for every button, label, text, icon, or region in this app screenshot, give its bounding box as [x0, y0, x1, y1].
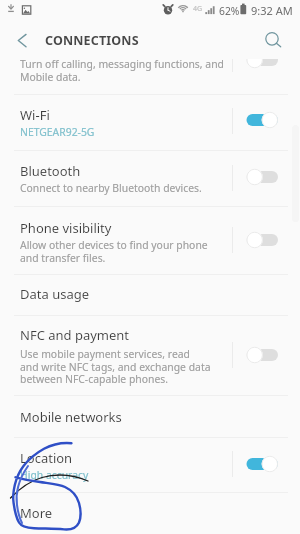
staticText: Allow other devices to find your phone a…: [20, 238, 208, 265]
staticText: Location: [20, 449, 73, 467]
staticText: NETGEAR92-5G: [20, 125, 95, 139]
button[interactable]: Location toggle: [238, 450, 286, 478]
button[interactable]: [0, 275, 300, 314]
staticText: Phone visibility: [20, 219, 112, 237]
staticText: High accuracy: [20, 468, 89, 482]
button[interactable]: [0, 151, 300, 205]
button[interactable]: Phone visibility toggle: [238, 226, 286, 254]
button[interactable]: Search: [258, 25, 286, 53]
staticText: Data usage: [20, 285, 90, 303]
button[interactable]: [0, 316, 300, 394]
staticText: Turn off calling, messaging functions, a…: [20, 57, 224, 84]
button[interactable]: [0, 59, 300, 93]
button[interactable]: [0, 396, 300, 436]
staticText: 9:32 AM: [251, 3, 293, 18]
button[interactable]: NFC and payment toggle: [238, 341, 286, 369]
staticText: Wi-Fi: [20, 106, 50, 124]
button[interactable]: [0, 438, 300, 491]
button[interactable]: [0, 207, 300, 273]
button[interactable]: Navigate up: [8, 26, 36, 54]
staticText: Use mobile payment services, read and wr…: [20, 347, 211, 386]
button[interactable]: Bluetooth toggle: [238, 163, 286, 191]
staticText: 4G: [193, 4, 203, 14]
staticText: NFC and payment: [20, 326, 130, 344]
staticText: Mobile networks: [20, 408, 122, 426]
staticText: More: [20, 504, 53, 522]
button[interactable]: [0, 95, 300, 149]
staticText: 62%: [219, 4, 240, 18]
button[interactable]: [0, 493, 300, 534]
staticText: Connect to nearby Bluetooth devices.: [20, 181, 202, 195]
button[interactable]: Wi-Fi toggle: [238, 106, 286, 134]
staticText: Bluetooth: [20, 162, 81, 180]
staticText: CONNECTIONS: [45, 32, 139, 49]
